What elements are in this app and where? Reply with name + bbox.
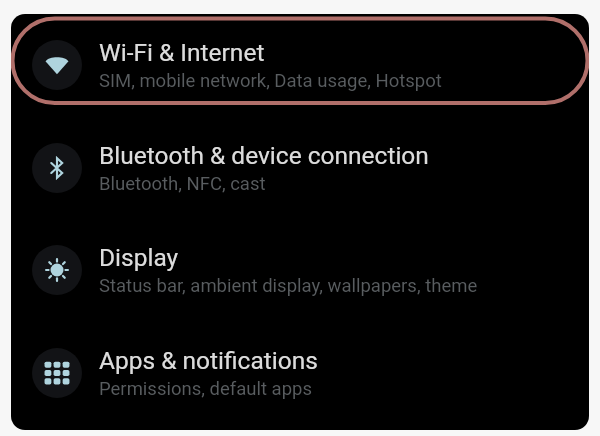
button[interactable]: Bluetooth <box>11 116 589 219</box>
button[interactable]: Wi-Fi and Internet <box>11 14 589 116</box>
other: Wi-Fi and Internet <box>32 40 82 90</box>
staticText: SIM, mobile network, Data usage, Hotspot <box>99 70 442 92</box>
other: Display <box>32 245 82 295</box>
button[interactable]: Apps and notifications <box>11 321 589 424</box>
staticText: Bluetooth & device connection <box>99 141 429 170</box>
other: Apps and notifications <box>32 348 82 398</box>
staticText: Wi-Fi & Internet <box>99 38 265 67</box>
staticText: Bluetooth, NFC, cast <box>99 173 266 195</box>
staticText: Status bar, ambient display, wallpapers,… <box>99 275 478 297</box>
other: Bluetooth <box>32 143 82 193</box>
staticText: Permissions, default apps <box>99 378 312 400</box>
staticText: Display <box>99 243 179 272</box>
staticText: Apps & notifications <box>99 346 318 375</box>
button[interactable]: Display <box>11 218 589 321</box>
